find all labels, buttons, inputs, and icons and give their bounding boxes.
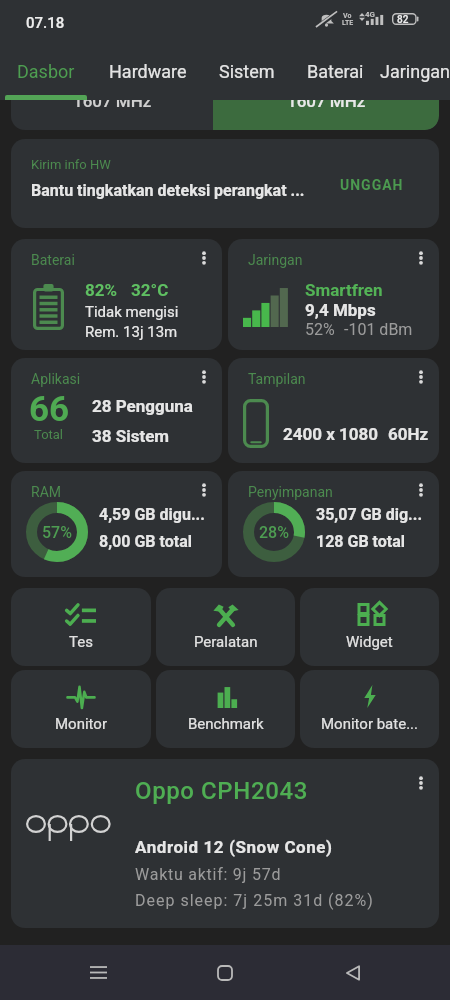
staticText: Bantu tingkatkan deteksi perangkat ... xyxy=(31,181,305,200)
staticText: Total xyxy=(34,427,64,442)
staticText: 82 xyxy=(397,14,409,26)
staticText: Jaringan xyxy=(380,61,450,82)
staticText: 57% xyxy=(42,523,72,542)
staticText: Benchmark xyxy=(188,715,264,733)
button[interactable]: Aplikasi xyxy=(11,358,222,463)
staticText: UNGGAH xyxy=(340,177,404,193)
button[interactable]: Tes xyxy=(11,588,151,666)
staticText: Oppo CPH2043 xyxy=(135,777,308,805)
staticText: 60Hz xyxy=(388,424,429,444)
staticText: Baterai xyxy=(307,61,364,82)
staticText: 28 Pengguna xyxy=(92,396,193,416)
button[interactable]: More options xyxy=(407,769,435,797)
staticText: Deep sleep: 7j 25m 31d (82%) xyxy=(135,891,374,910)
staticText: Waktu aktif: 9j 57d xyxy=(135,865,282,884)
staticText: Peralatan xyxy=(194,633,258,651)
staticText: 9,4 Mbps xyxy=(305,300,376,320)
button[interactable]: More options xyxy=(190,363,218,391)
staticText: 38 Sistem xyxy=(92,426,170,446)
staticText: Vo xyxy=(343,12,352,20)
staticText: Monitor bate... xyxy=(321,715,419,733)
button[interactable]: Baterai xyxy=(291,45,380,100)
button[interactable]: More options xyxy=(190,476,218,504)
staticText: Monitor xyxy=(55,715,107,733)
button[interactable]: Widget xyxy=(300,588,439,666)
staticText: 1607 MHz xyxy=(73,100,152,111)
staticText: 2400 x 1080 xyxy=(283,424,379,444)
staticText: Tes xyxy=(69,633,93,651)
staticText: Rem. 13j 13m xyxy=(85,323,178,341)
staticText: 82% xyxy=(85,280,118,300)
staticText: -101 dBm xyxy=(344,320,413,339)
staticText: Tidak mengisi xyxy=(85,303,179,321)
staticText: 1607 MHz xyxy=(287,100,366,111)
button[interactable]: More options xyxy=(407,363,435,391)
button[interactable]: Kirim info HW xyxy=(11,139,439,228)
button[interactable]: More options xyxy=(190,244,218,272)
staticText: 128 GB total xyxy=(316,532,406,551)
button[interactable]: Peralatan xyxy=(156,588,295,666)
staticText: Sistem xyxy=(219,61,275,82)
button[interactable]: Back xyxy=(323,945,383,1000)
staticText: Baterai xyxy=(31,252,75,268)
staticText: Dasbor xyxy=(17,61,75,82)
staticText: Penyimpanan xyxy=(248,484,333,500)
button[interactable]: Jaringan xyxy=(228,239,439,350)
button[interactable]: More options xyxy=(11,759,439,928)
staticText: 8,00 GB total xyxy=(99,532,192,551)
staticText: 66 xyxy=(29,389,70,430)
staticText: 07.18 xyxy=(26,14,65,32)
button[interactable]: Tampilan xyxy=(228,358,439,463)
button[interactable]: Home xyxy=(195,945,255,1000)
button[interactable]: Jaringan xyxy=(380,45,450,100)
button[interactable]: UNGGAH xyxy=(340,177,404,193)
staticText: Kirim info HW xyxy=(31,157,111,172)
staticText: RAM xyxy=(31,484,61,500)
button[interactable]: Recent apps xyxy=(68,945,128,1000)
button[interactable]: Dasbor xyxy=(0,45,92,100)
button[interactable]: More options xyxy=(407,476,435,504)
button[interactable]: Sistem xyxy=(203,45,291,100)
staticText: Widget xyxy=(346,633,393,651)
staticText: Android 12 (Snow Cone) xyxy=(135,837,333,857)
button[interactable]: RAM xyxy=(11,471,222,577)
staticText: 4,59 GB digu... xyxy=(99,505,205,524)
staticText: 32°C xyxy=(131,280,169,300)
button[interactable]: Hardware xyxy=(92,45,203,100)
button[interactable]: Benchmark xyxy=(156,670,295,748)
staticText: LTE xyxy=(342,19,354,27)
staticText: Smartfren xyxy=(305,280,383,300)
staticText: 35,07 GB dig... xyxy=(316,505,423,524)
staticText: Jaringan xyxy=(248,252,303,268)
staticText: 52% xyxy=(305,320,335,339)
staticText: Hardware xyxy=(109,61,187,82)
button[interactable]: Baterai xyxy=(11,239,222,350)
button[interactable]: Monitor xyxy=(11,670,151,748)
button[interactable]: More options xyxy=(407,244,435,272)
button[interactable]: Monitor bate... xyxy=(300,670,439,748)
staticText: Tampilan xyxy=(248,371,306,387)
button[interactable]: Penyimpanan xyxy=(228,471,439,577)
staticText: 28% xyxy=(259,523,289,542)
button[interactable]: 1607 MHz xyxy=(11,100,439,130)
staticText: 4G xyxy=(365,10,376,19)
staticText: Aplikasi xyxy=(31,371,81,387)
